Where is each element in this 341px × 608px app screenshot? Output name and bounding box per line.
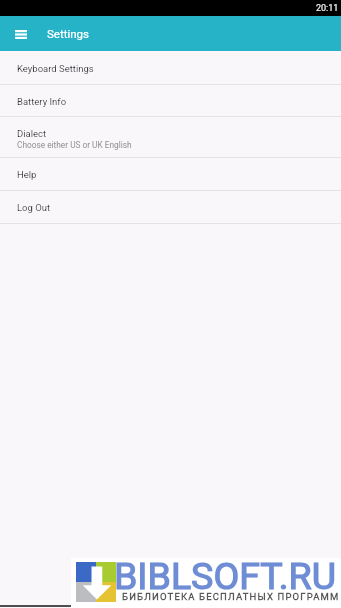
staticText: Settings	[47, 27, 89, 40]
button[interactable]: Dialect	[0, 117, 341, 158]
staticText: Log Out	[17, 202, 51, 213]
staticText: 20:11	[316, 3, 339, 14]
staticText: Keyboard Settings	[17, 63, 94, 74]
staticText: БИБЛИОТЕКА БЕСПЛАТНЫХ ПРОГРАММ	[122, 591, 340, 602]
button[interactable]: Open navigation menu	[6, 16, 36, 51]
staticText: Help	[17, 169, 37, 180]
staticText: BIBLSOFT.RU	[114, 554, 336, 598]
button[interactable]: Help	[0, 158, 341, 191]
staticText: Battery Info	[17, 96, 67, 107]
button[interactable]: Battery Info	[0, 85, 341, 117]
staticText: Dialect	[17, 128, 47, 139]
staticText: Choose either US or UK English	[17, 140, 132, 150]
button[interactable]: Keyboard Settings	[0, 51, 341, 85]
button[interactable]: Log Out	[0, 191, 341, 224]
